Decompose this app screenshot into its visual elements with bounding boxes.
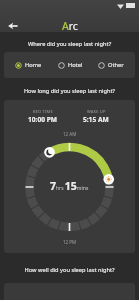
button[interactable]: Hotel [58,61,83,69]
button[interactable]: Other [98,61,124,69]
staticText: How well did you sleep last night? [0,266,139,274]
button[interactable]: Back [4,17,22,35]
staticText: Arc [62,19,78,33]
staticText: Hotel [68,61,83,69]
button[interactable]: Home [15,61,42,69]
staticText: 12 AM [63,131,77,137]
staticText: 5:15 AM [83,115,109,124]
staticText: Other [108,61,124,69]
staticText: 10:00 PM [28,115,57,124]
staticText: Where did you sleep last night? [0,40,139,48]
staticText: 7hrs 15mins [50,179,89,193]
staticText: 12 PM [63,239,77,245]
staticText: WAKE UP [87,109,106,114]
staticText: BED TIME [33,109,53,114]
staticText: Home [25,61,42,69]
staticText: How long did you sleep last night? [0,87,139,95]
